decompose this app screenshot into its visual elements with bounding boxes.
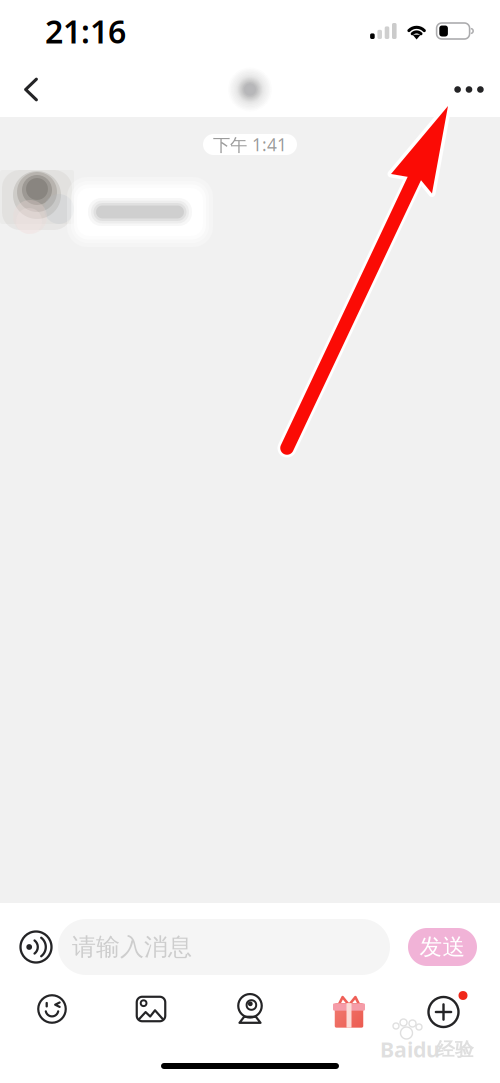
button[interactable]: Camera bbox=[219, 991, 281, 1027]
button[interactable]: More bbox=[438, 62, 500, 117]
staticText: Baidu bbox=[380, 1035, 440, 1063]
staticText: 21:16 bbox=[45, 10, 126, 52]
staticText: 请输入消息 bbox=[72, 932, 192, 962]
button[interactable]: Photos bbox=[120, 991, 182, 1027]
button[interactable]: Back bbox=[0, 62, 62, 117]
button[interactable]: 请输入消息 bbox=[58, 919, 390, 975]
button[interactable]: Gift bbox=[318, 991, 380, 1027]
button[interactable]: 发送 bbox=[408, 928, 477, 966]
staticText: 经验 bbox=[436, 1038, 474, 1061]
staticText: 下午 1:41 bbox=[213, 133, 287, 156]
staticText: 发送 bbox=[419, 933, 465, 961]
button[interactable]: Emoji bbox=[21, 991, 83, 1027]
button[interactable]: More options bbox=[417, 991, 479, 1027]
button[interactable]: Voice message bbox=[14, 917, 58, 977]
